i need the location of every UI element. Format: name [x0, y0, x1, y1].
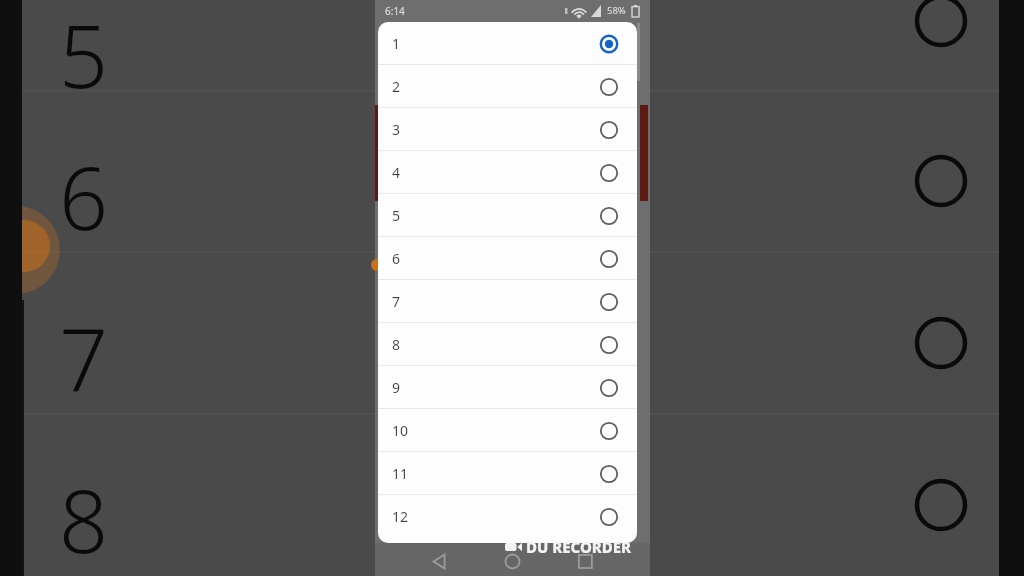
- staticText: 58%: [607, 4, 626, 17]
- button[interactable]: 7: [378, 280, 637, 323]
- button[interactable]: 4: [378, 151, 637, 194]
- button[interactable]: 2: [378, 65, 637, 108]
- staticText: 2: [392, 77, 401, 96]
- button[interactable]: 1: [378, 22, 637, 65]
- staticText: DU RECORDER: [526, 537, 632, 557]
- staticText: 10: [392, 421, 409, 440]
- staticText: 12: [392, 507, 409, 526]
- staticText: 3: [392, 120, 401, 139]
- staticText: 11: [392, 464, 409, 483]
- button[interactable]: 12: [378, 495, 637, 538]
- button[interactable]: 11: [378, 452, 637, 495]
- staticText: 9: [392, 378, 401, 397]
- staticText: 5: [59, 0, 109, 113]
- staticText: 8: [392, 335, 401, 354]
- staticText: 7: [392, 292, 401, 311]
- staticText: 8: [59, 461, 109, 576]
- button[interactable]: 5: [378, 194, 637, 237]
- button[interactable]: 6: [378, 237, 637, 280]
- button[interactable]: 8: [378, 323, 637, 366]
- staticText: 7: [59, 299, 109, 416]
- staticText: 1: [392, 34, 401, 53]
- button[interactable]: 10: [378, 409, 637, 452]
- staticText: 4: [392, 163, 401, 182]
- button[interactable]: 3: [378, 108, 637, 151]
- staticText: 6: [392, 249, 401, 268]
- staticText: 5: [392, 206, 401, 225]
- staticText: 6:14: [385, 4, 405, 18]
- button[interactable]: 9: [378, 366, 637, 409]
- other: Navigation bar: [375, 543, 650, 576]
- staticText: 6: [59, 138, 109, 255]
